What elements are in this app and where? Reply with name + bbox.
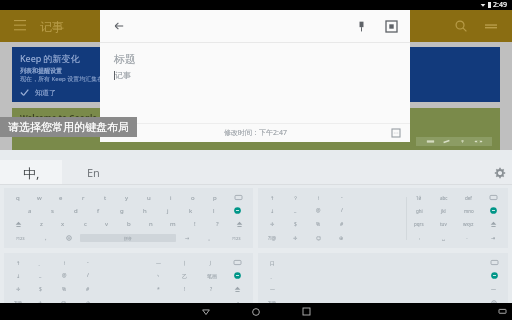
staticText: 1й <box>416 195 422 201</box>
staticText: wxyz <box>463 221 474 227</box>
button[interactable]: Welcome to Google Keep <box>12 108 500 150</box>
button[interactable]: Search <box>450 15 472 37</box>
staticText: 、 <box>38 260 43 266</box>
staticText: def <box>465 195 472 201</box>
staticText: abc <box>440 195 448 201</box>
staticText: % <box>316 221 321 228</box>
staticText: % <box>62 286 67 293</box>
staticText: 知道了 <box>35 88 56 97</box>
staticText: u <box>147 194 151 202</box>
button[interactable]: Keep 的新变化 <box>12 47 500 102</box>
staticText: g <box>120 207 124 215</box>
staticText: ! <box>194 220 196 228</box>
staticText: w <box>37 194 42 202</box>
staticText: 、 <box>270 273 275 279</box>
button[interactable]: Settings <box>487 160 512 185</box>
staticText: _ <box>39 272 42 279</box>
button[interactable]: pen <box>438 140 454 143</box>
staticText: * <box>157 286 160 293</box>
staticText: ☺ <box>61 300 67 306</box>
staticText: ✛ <box>38 300 43 306</box>
staticText: 中, <box>23 164 40 182</box>
staticText: o <box>191 194 195 202</box>
staticText: ⇥ <box>491 235 496 241</box>
staticText: v <box>105 220 109 228</box>
staticText: Welcome to Google Keep <box>20 112 120 123</box>
staticText: ， <box>156 300 161 306</box>
staticText: ✛ <box>270 221 275 227</box>
staticText: h <box>143 207 147 215</box>
button[interactable]: Recents <box>291 303 321 320</box>
staticText: ✛ <box>293 235 298 241</box>
staticText: 拼音 <box>124 236 132 241</box>
button[interactable]: list <box>422 140 438 143</box>
staticText: mno <box>464 208 474 214</box>
button[interactable]: Home <box>241 303 271 320</box>
staticText: En <box>87 165 100 180</box>
staticText: ghi <box>416 208 423 214</box>
staticText: ␣ <box>442 236 445 241</box>
staticText: $ <box>39 286 42 293</box>
staticText: 一 <box>270 286 275 292</box>
staticText: l <box>213 207 215 215</box>
button[interactable]: ↑ <box>4 253 253 313</box>
button[interactable]: Hide keyboard <box>498 307 507 316</box>
button[interactable]: Back <box>191 303 221 320</box>
staticText: — <box>491 286 497 293</box>
button[interactable]: q <box>4 188 253 248</box>
staticText: ? <box>216 220 219 228</box>
staticText: - <box>87 259 89 266</box>
staticText: 2:49 <box>493 0 507 10</box>
staticText: 列表和提醒设置 <box>20 67 62 75</box>
staticText: x <box>61 220 65 228</box>
staticText: 记事 <box>40 19 64 34</box>
staticText: q <box>16 194 20 202</box>
staticText: # <box>86 286 90 293</box>
staticText: # <box>340 221 344 228</box>
staticText: f <box>97 207 100 215</box>
staticText: i <box>170 194 172 202</box>
staticText: 标题 <box>114 52 136 66</box>
staticText: ! <box>184 286 186 293</box>
staticText: a <box>28 207 32 215</box>
staticText: 修改时间：下午2:47 <box>224 128 287 138</box>
button[interactable]: En <box>62 160 124 185</box>
staticText: ☺ <box>316 235 322 241</box>
staticText: - <box>341 194 343 201</box>
staticText: d <box>74 207 78 215</box>
staticText: 请选择您常用的键盘布局 <box>8 120 129 134</box>
button[interactable]: cam <box>470 140 486 143</box>
staticText: ✛ <box>16 286 21 292</box>
staticText: 丿 <box>209 260 214 266</box>
staticText: ?!@ <box>268 235 277 242</box>
button[interactable]: 口 <box>258 253 508 313</box>
button[interactable]: ↑ <box>258 188 508 248</box>
button[interactable]: 中, <box>0 160 62 185</box>
staticText: 一 <box>156 260 161 266</box>
button[interactable]: Pin <box>350 15 372 37</box>
staticText: ? <box>210 286 213 293</box>
staticText: 乙 <box>182 273 187 279</box>
staticText: c <box>84 220 87 228</box>
button[interactable]: mic <box>454 140 470 143</box>
staticText: ↑ <box>16 260 21 266</box>
staticText: 口 <box>270 260 275 266</box>
staticText: 。 <box>466 235 471 241</box>
staticText: ?!@ <box>14 300 23 307</box>
staticText: 笔画 <box>207 273 217 279</box>
button[interactable]: Menu <box>10 16 30 36</box>
staticText: , <box>45 234 47 242</box>
button[interactable]: Archive <box>380 15 402 37</box>
button[interactable]: More options <box>389 126 403 140</box>
staticText: ， <box>417 235 422 241</box>
button[interactable]: View options <box>480 15 502 37</box>
staticText: ⊕ <box>86 300 91 306</box>
staticText: @ <box>62 272 67 279</box>
staticText: 丶 <box>156 273 161 279</box>
staticText: Keep 的新变化 <box>20 52 80 64</box>
staticText: ?123 <box>16 236 25 241</box>
staticText: z <box>40 220 43 228</box>
staticText: _ <box>294 207 297 214</box>
staticText: j <box>167 207 169 215</box>
button[interactable]: Back <box>108 15 130 37</box>
